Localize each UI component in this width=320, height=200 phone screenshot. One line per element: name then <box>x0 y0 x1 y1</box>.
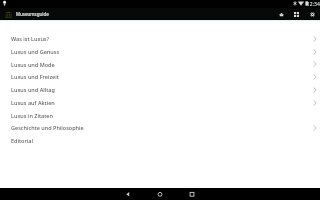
staticText: Museumsguide <box>16 11 49 17</box>
staticText: Luxus und Alltag <box>11 86 55 93</box>
staticText: Luxus und Genuss <box>11 48 60 55</box>
button[interactable]: Home <box>144 188 176 200</box>
staticText: Luxus und Freizeit <box>11 73 59 80</box>
button[interactable]: Grid view <box>288 8 304 20</box>
button[interactable]: Luxus auf Aktien <box>0 96 320 109</box>
staticText: 12:34 <box>307 1 320 8</box>
staticText: Luxus in Zitaten <box>11 112 53 119</box>
button[interactable]: Back <box>112 188 144 200</box>
button[interactable]: Home <box>274 8 288 20</box>
staticText: Luxus auf Aktien <box>11 99 55 106</box>
staticText: Was ist Luxus? <box>11 35 49 42</box>
button[interactable]: Geschichte und Philosophie <box>0 121 320 134</box>
button[interactable]: Luxus und Freizeit <box>0 70 320 83</box>
button[interactable]: Luxus und Genuss <box>0 45 320 58</box>
button[interactable]: Settings <box>304 8 320 20</box>
button[interactable]: Luxus und Mode <box>0 58 320 70</box>
staticText: Luxus und Mode <box>11 61 55 68</box>
staticText: Geschichte und Philosophie <box>11 124 84 131</box>
button[interactable]: Luxus in Zitaten <box>0 109 320 121</box>
button[interactable]: Recent apps <box>176 188 208 200</box>
button[interactable]: Editorial <box>0 134 320 147</box>
button[interactable]: Was ist Luxus? <box>0 32 320 45</box>
staticText: Editorial <box>11 137 33 144</box>
button[interactable]: Luxus und Alltag <box>0 83 320 96</box>
